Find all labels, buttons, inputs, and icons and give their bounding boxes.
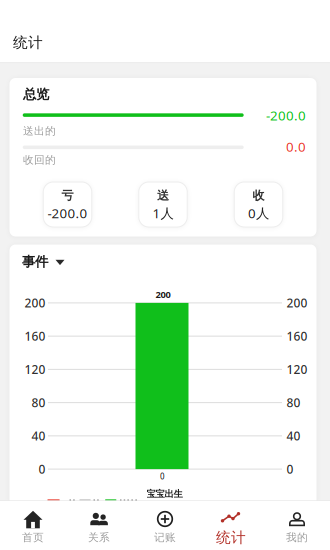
- staticText: 40: [31, 428, 45, 444]
- staticText: 0: [160, 471, 165, 482]
- staticText: 200: [286, 295, 307, 311]
- staticText: 0: [38, 461, 45, 477]
- staticText: -200.0: [47, 204, 87, 222]
- staticText: 统计: [13, 34, 43, 52]
- staticText: 记账: [154, 531, 176, 544]
- button[interactable]: 关系: [66, 501, 132, 550]
- staticText: 我的: [286, 531, 308, 544]
- staticText: 120: [286, 361, 307, 377]
- staticText: 40: [286, 428, 300, 444]
- staticText: 160: [286, 328, 307, 344]
- button[interactable]: 统计: [198, 501, 264, 550]
- staticText: 0.0: [286, 138, 306, 155]
- staticText: 送出的: [23, 124, 56, 137]
- button[interactable]: 记账: [132, 501, 198, 550]
- staticText: 收: [252, 188, 264, 203]
- staticText: 0: [286, 461, 293, 477]
- button[interactable]: 首页: [0, 501, 66, 550]
- staticText: 总览: [23, 86, 49, 102]
- staticText: 统计: [216, 528, 246, 546]
- staticText: 1人: [152, 204, 173, 222]
- staticText: 亏: [61, 188, 73, 203]
- staticText: 关系: [88, 531, 110, 544]
- staticText: 200: [24, 295, 45, 311]
- staticText: 收回的: [23, 153, 56, 166]
- staticText: -200.0: [266, 106, 306, 124]
- staticText: 0人: [248, 204, 269, 222]
- staticText: 200: [155, 288, 170, 300]
- staticText: 事件: [22, 254, 48, 270]
- staticText: 送: [157, 188, 169, 203]
- staticText: 80: [286, 395, 300, 411]
- staticText: 160: [24, 328, 45, 344]
- button[interactable]: 我的: [264, 501, 330, 550]
- staticText: 宝宝出生: [146, 488, 182, 500]
- staticText: 首页: [22, 531, 44, 544]
- staticText: 120: [24, 361, 45, 377]
- button[interactable]: 事件: [13, 251, 83, 273]
- staticText: 80: [31, 395, 45, 411]
